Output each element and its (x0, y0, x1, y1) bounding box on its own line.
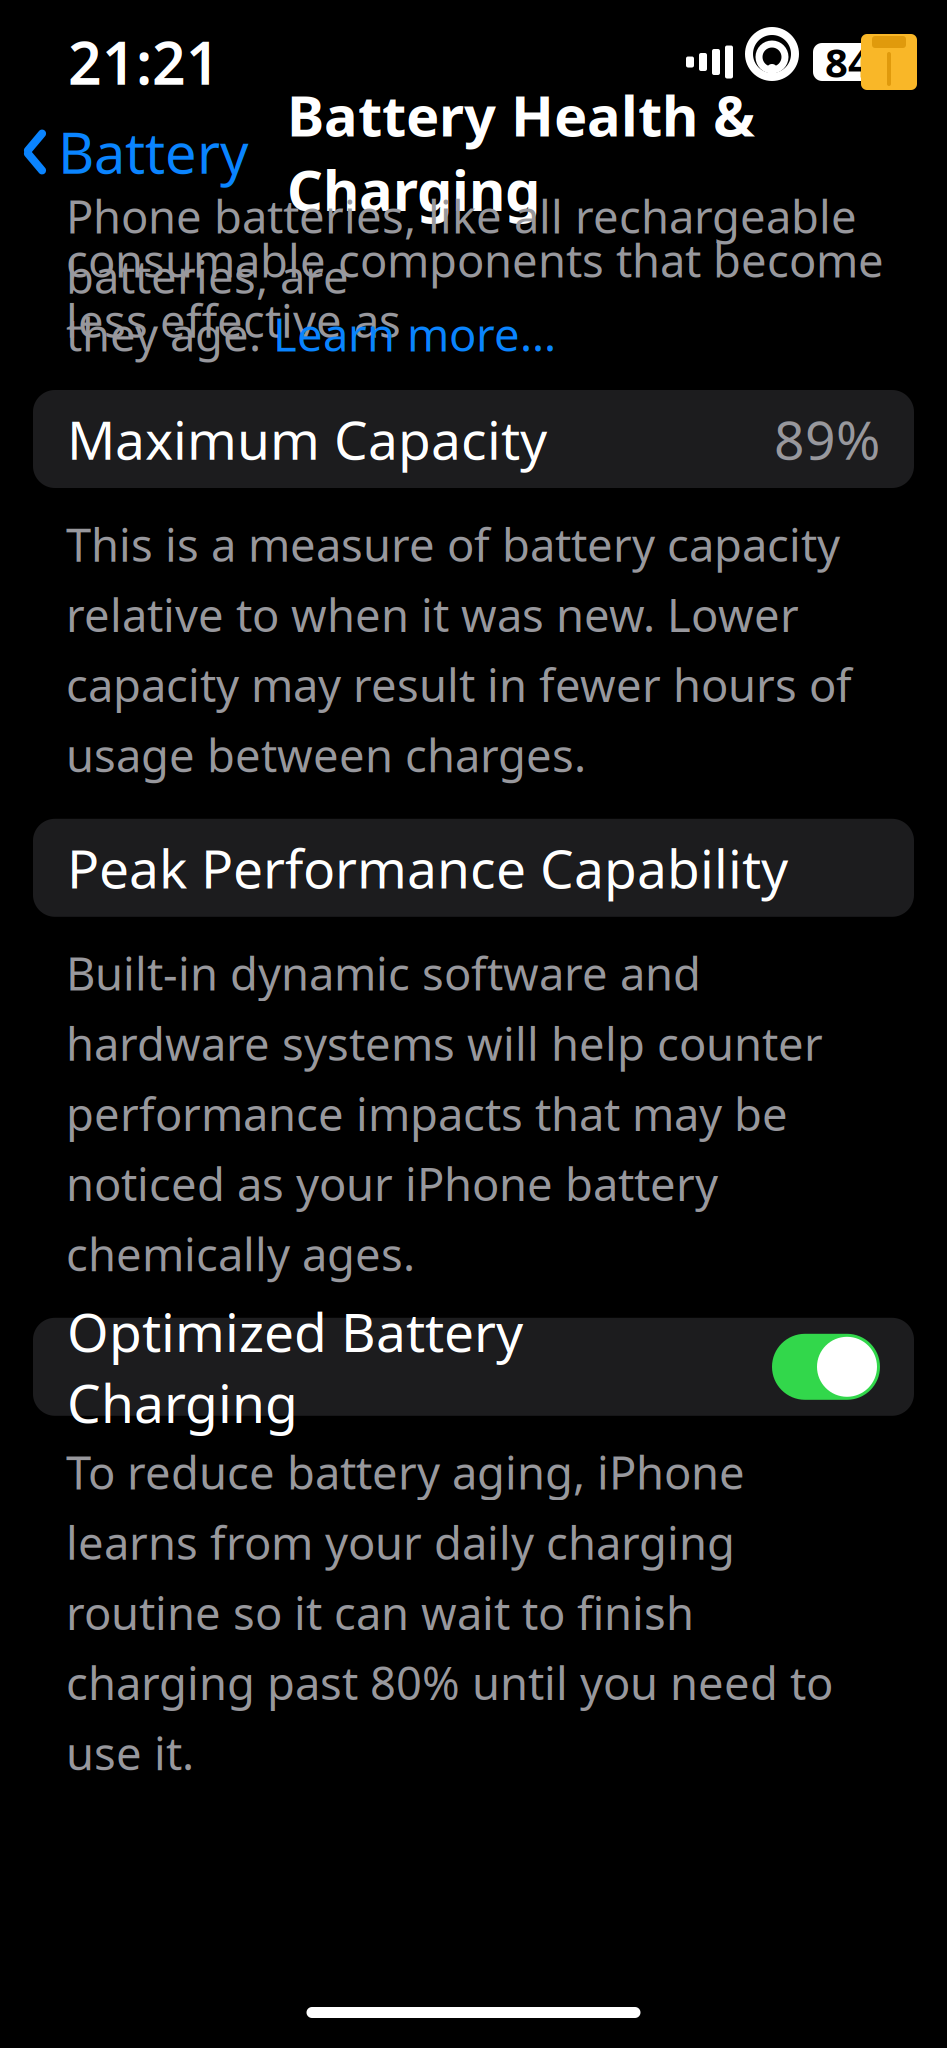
staticText: 84 (825, 35, 871, 88)
button[interactable]: Optimized Battery Charging (33, 1318, 914, 1416)
staticText: Maximum Capacity (67, 404, 547, 474)
button[interactable]: Back to Battery (0, 105, 249, 199)
staticText: 21:21 (68, 23, 220, 101)
staticText: 89% (774, 404, 880, 474)
staticText: Optimized Battery Charging (67, 1296, 523, 1438)
staticText: Battery (58, 115, 249, 189)
staticText: Battery Health & Charging (287, 78, 755, 226)
staticText: This is a measure of battery capacity re… (66, 514, 852, 785)
staticText: Built-in dynamic software and hardware s… (66, 943, 823, 1284)
staticText: Peak Performance Capability (67, 832, 788, 903)
staticText: Learn more... (273, 304, 556, 364)
staticText: they age. (66, 304, 273, 364)
staticText: To reduce battery aging, iPhone learns f… (66, 1442, 833, 1783)
staticText: Phone batteries, like all rechargeable b… (66, 186, 857, 306)
button[interactable]: Maximum Capacity (33, 390, 914, 488)
button[interactable]: Peak Performance Capability (33, 819, 914, 917)
button[interactable]: Learn more... (273, 304, 556, 364)
staticText: consumable components that become less e… (66, 230, 884, 350)
